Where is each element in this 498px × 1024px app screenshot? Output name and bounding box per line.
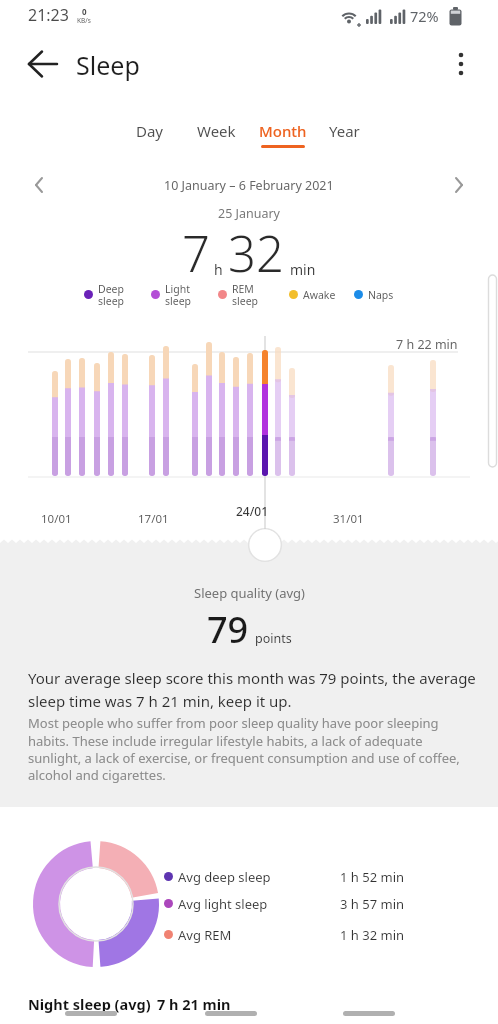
staticText: 7 — [182, 220, 210, 287]
staticText: Sleep — [76, 48, 140, 82]
staticText: 7 h 22 min — [396, 336, 458, 353]
staticText: 0 — [82, 6, 87, 17]
staticText: Your average sleep score this month was … — [28, 668, 476, 711]
button[interactable] — [28, 48, 60, 80]
staticText: Deep sleep — [98, 282, 125, 308]
staticText: 32 — [228, 220, 284, 287]
staticText: Avg REM — [178, 926, 232, 944]
button[interactable] — [343, 1011, 395, 1016]
button[interactable] — [447, 50, 475, 78]
staticText: 31/01 — [333, 511, 364, 527]
button[interactable] — [26, 172, 52, 198]
staticText: 10/01 — [41, 511, 72, 527]
button[interactable]: Day — [117, 117, 183, 145]
button[interactable] — [446, 172, 472, 198]
staticText: 72% — [410, 6, 439, 26]
staticText: Sleep quality (avg) — [194, 584, 305, 602]
staticText: 17/01 — [138, 511, 169, 527]
staticText: KB/s — [77, 16, 91, 25]
staticText: 7 h 21 min — [157, 994, 231, 1014]
staticText: 10 January – 6 February 2021 — [164, 177, 334, 194]
staticText: Week — [197, 121, 236, 141]
staticText: 3 h 57 min — [340, 895, 405, 913]
staticText: 21:23 — [28, 4, 69, 26]
staticText: Year — [329, 121, 360, 141]
button[interactable]: Month — [250, 117, 316, 145]
staticText: Avg light sleep — [178, 895, 268, 913]
staticText: 25 January — [218, 205, 280, 222]
staticText: Light sleep — [165, 282, 192, 308]
button[interactable]: Year — [311, 117, 377, 145]
button[interactable] — [205, 1011, 257, 1016]
staticText: 1 h 52 min — [340, 868, 405, 886]
staticText: REM sleep — [232, 282, 259, 308]
staticText: points — [255, 630, 292, 647]
staticText: Avg deep sleep — [178, 868, 271, 886]
button[interactable] — [65, 1011, 117, 1016]
staticText: Awake — [303, 288, 336, 302]
staticText: Naps — [368, 288, 394, 302]
staticText: 24/01 — [236, 503, 269, 519]
staticText: 79 — [207, 605, 249, 654]
staticText: h — [214, 260, 223, 279]
staticText: Month — [259, 121, 307, 141]
staticText: Day — [136, 121, 164, 141]
staticText: Most people who suffer from poor sleep q… — [28, 714, 460, 784]
staticText: min — [290, 260, 316, 279]
staticText: Night sleep (avg) — [28, 994, 151, 1014]
button[interactable]: Week — [183, 117, 249, 145]
staticText: 1 h 32 min — [340, 926, 405, 944]
